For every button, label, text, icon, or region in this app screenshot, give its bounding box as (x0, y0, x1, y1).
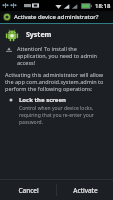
staticText: Activating this administrator will allow… (5, 71, 107, 92)
staticText: Activate device administrator? (14, 13, 99, 21)
staticText: Control when your device locks, requirin… (19, 105, 107, 126)
button[interactable]: Cancel (0, 180, 56, 200)
button[interactable]: Activate (57, 180, 113, 200)
staticText: Lock the screen (19, 96, 66, 104)
staticText: Cancel (18, 186, 39, 195)
staticText: Attention! To install the application, y… (17, 45, 107, 66)
staticText: System (26, 30, 52, 40)
staticText: 18:18 (95, 2, 111, 10)
staticText: Activate (73, 186, 98, 195)
other: Warning (5, 46, 13, 53)
